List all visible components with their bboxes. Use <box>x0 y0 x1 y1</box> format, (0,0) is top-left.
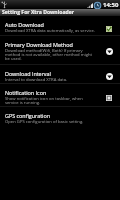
button[interactable]: Open list <box>103 70 115 82</box>
staticText: Primary Download Method <box>5 41 73 48</box>
staticText: Show notification icon on taskbar, when … <box>5 96 97 106</box>
button[interactable]: Primary Download Method <box>0 36 120 64</box>
staticText: Download Interval <box>5 70 51 77</box>
staticText: Download XTRA data automatically, as ser… <box>5 28 95 34</box>
staticText: GPS configuration <box>5 112 51 119</box>
button[interactable]: Open list <box>103 45 115 57</box>
button[interactable]: GPS configuration <box>0 107 120 126</box>
button[interactable]: Notification Icon <box>0 84 120 106</box>
staticText: Setting For Xtra Downloader <box>2 9 75 16</box>
button[interactable]: Auto Download <box>0 16 120 35</box>
staticText: 14:50 <box>103 1 119 9</box>
staticText: Open GPS configuration of basic setting. <box>5 119 84 125</box>
staticText: Notification Icon <box>5 89 47 96</box>
staticText: Interval to download XTRA data. <box>5 77 68 83</box>
staticText: Download method(Wifi, Both) If primary m… <box>5 48 97 62</box>
button[interactable]: Checked <box>103 23 115 35</box>
staticText: Auto Download <box>5 21 44 28</box>
button[interactable]: Download Interval <box>0 65 120 83</box>
button[interactable]: Unchecked <box>103 92 115 104</box>
